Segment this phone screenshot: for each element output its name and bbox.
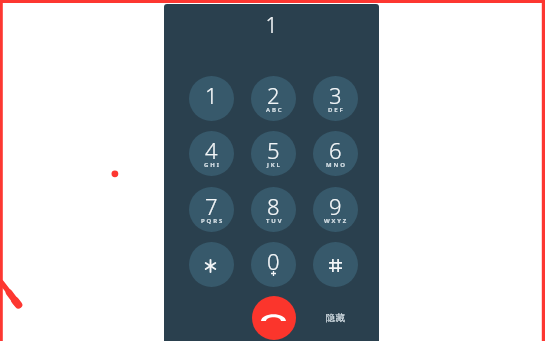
button[interactable]: End call: [252, 296, 296, 340]
staticText: ABC: [266, 106, 284, 114]
button[interactable]: Key 0: [251, 242, 296, 287]
staticText: 7: [205, 191, 218, 221]
button[interactable]: Key 5: [251, 131, 296, 176]
staticText: 0: [267, 246, 280, 276]
button[interactable]: Key 9: [313, 187, 358, 232]
button[interactable]: Key #: [313, 242, 358, 287]
staticText: 隐藏: [326, 312, 345, 324]
staticText: PQRS: [201, 217, 225, 225]
staticText: 6: [329, 135, 342, 165]
staticText: 2: [267, 80, 280, 110]
button[interactable]: Key 6: [313, 131, 358, 176]
button[interactable]: Key 3: [313, 76, 358, 121]
staticText: 5: [267, 135, 280, 165]
button[interactable]: Key 1: [189, 76, 234, 121]
staticText: MNO: [326, 161, 347, 169]
staticText: 8: [267, 191, 280, 221]
staticText: JKL: [267, 161, 282, 169]
staticText: 4: [205, 135, 218, 165]
staticText: GHI: [204, 161, 221, 169]
button[interactable]: Key 8: [251, 187, 296, 232]
button[interactable]: Key 4: [189, 131, 234, 176]
staticText: TUV: [266, 217, 284, 225]
button[interactable]: 隐藏: [313, 306, 357, 330]
staticText: DEF: [328, 106, 345, 114]
staticText: 3: [329, 80, 342, 110]
button[interactable]: Key 2: [251, 76, 296, 121]
staticText: 9: [329, 191, 342, 221]
staticText: 1: [164, 11, 379, 40]
staticText: WXYZ: [324, 217, 349, 225]
staticText: 1: [205, 80, 218, 110]
button[interactable]: Key *: [189, 242, 234, 287]
button[interactable]: Key 7: [189, 187, 234, 232]
